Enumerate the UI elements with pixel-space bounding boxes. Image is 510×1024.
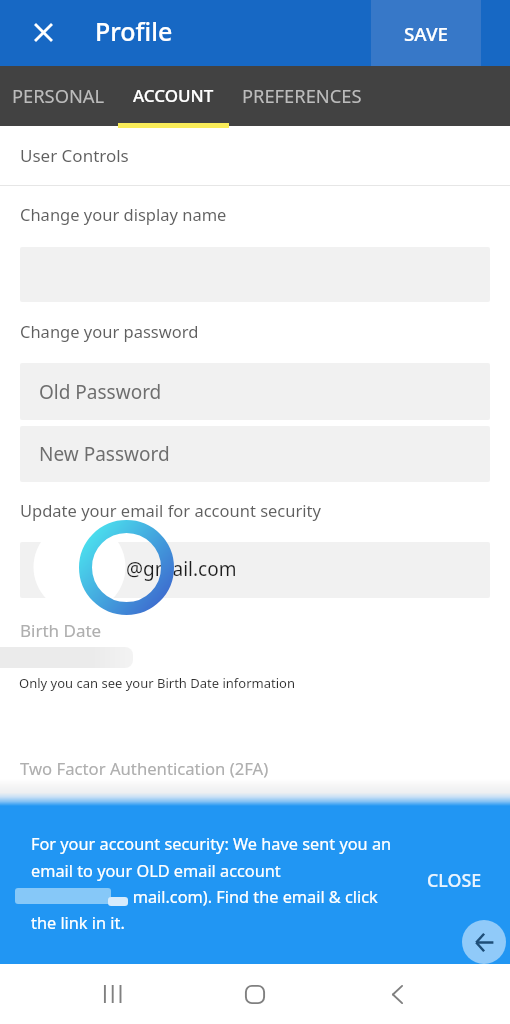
button[interactable]: Close: [26, 15, 60, 49]
button[interactable]: Recent apps: [82, 964, 142, 1024]
staticText: ACCOUNT: [133, 84, 214, 107]
staticText: Old Password: [39, 379, 162, 405]
button[interactable]: SAVE: [371, 0, 481, 66]
button[interactable]: New Password: [20, 426, 490, 482]
button[interactable]: ACCOUNT: [133, 65, 214, 125]
staticText: CLOSE: [427, 868, 482, 892]
staticText: Change your password: [20, 320, 199, 342]
staticText: Birth Date: [20, 619, 102, 642]
staticText: PREFERENCES: [242, 83, 362, 108]
button[interactable]: Back: [367, 964, 427, 1024]
button[interactable]: Back: [462, 920, 506, 964]
button[interactable]: Home: [225, 964, 285, 1024]
staticText: Two Factor Authentication (2FA): [20, 757, 269, 780]
staticText: New Password: [39, 441, 170, 467]
button[interactable]: Old Password: [20, 363, 490, 420]
staticText: Update your email for account security: [20, 499, 321, 521]
staticText: For your account security: We have sent …: [31, 833, 392, 933]
button[interactable]: PREFERENCES: [242, 65, 362, 125]
staticText: Only you can see your Birth Date informa…: [19, 674, 295, 692]
button[interactable]: CLOSE: [427, 868, 482, 892]
staticText: Change your display name: [20, 203, 227, 225]
staticText: User Controls: [20, 144, 129, 167]
staticText: PERSONAL: [12, 83, 105, 108]
staticText: SAVE: [404, 21, 448, 47]
staticText: Profile: [95, 14, 173, 48]
staticText: @gmail.com: [126, 556, 237, 582]
button[interactable]: PERSONAL: [12, 65, 105, 125]
button[interactable]: [20, 542, 490, 598]
